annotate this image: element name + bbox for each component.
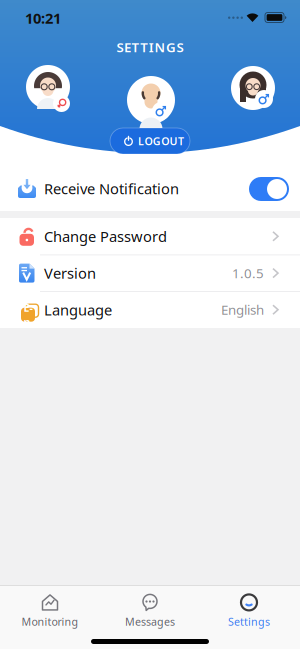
staticText: Messages xyxy=(125,614,175,629)
staticText: LOGOUT xyxy=(138,134,184,148)
button[interactable]: Profile 2 xyxy=(127,76,175,124)
staticText: En xyxy=(23,300,32,329)
staticText: Language xyxy=(44,300,112,319)
button[interactable]: Version xyxy=(0,255,300,291)
staticText: Settings xyxy=(228,614,270,629)
button[interactable]: LOGOUT xyxy=(110,128,190,154)
button[interactable]: Receive Notification xyxy=(249,177,289,201)
staticText: Version xyxy=(44,263,96,283)
staticText: Change Password xyxy=(44,227,167,246)
staticText: English xyxy=(221,301,264,318)
staticText: 10:21 xyxy=(25,8,61,28)
button[interactable]: Monitoring xyxy=(8,590,92,632)
staticText: Receive Notification xyxy=(44,179,179,198)
button[interactable]: En xyxy=(0,291,300,328)
staticText: 1.0.5 xyxy=(232,264,264,282)
button[interactable]: Change Password xyxy=(0,218,300,255)
button[interactable]: Profile 1 xyxy=(26,65,70,109)
button[interactable]: Messages xyxy=(108,590,192,632)
button[interactable]: Profile 3 xyxy=(231,66,275,110)
staticText: SETTINGS xyxy=(116,38,184,56)
staticText: Monitoring xyxy=(21,614,78,629)
button[interactable]: Settings xyxy=(207,590,291,632)
